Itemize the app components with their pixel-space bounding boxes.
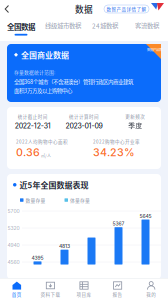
- button[interactable]: 客流数据: [126, 18, 168, 41]
- button[interactable]: 返回: [0, 1, 17, 17]
- button[interactable]: 数智产品详情了解: [104, 5, 149, 13]
- staticText: 2022购物中心开业率: [93, 138, 140, 145]
- staticText: 全国368个城市（不含港澳台）管辖行政区内商业建筑: [14, 77, 133, 85]
- staticText: 存量数据统计范围:: [14, 69, 55, 76]
- staticText: 0.36: [16, 146, 40, 159]
- staticText: 5645: [139, 213, 151, 219]
- staticText: 4560: [7, 259, 19, 265]
- staticText: 体量存量: [70, 197, 90, 204]
- staticText: 季度: [128, 122, 142, 130]
- staticText: 报告: [113, 291, 123, 298]
- button[interactable]: 品牌标识: [151, 2, 168, 15]
- staticText: 线级城市数据: [45, 21, 81, 30]
- staticText: 5367: [112, 221, 124, 227]
- button[interactable]: 项目库: [67, 278, 101, 300]
- staticText: 2022-12-31: [15, 122, 51, 130]
- staticText: 24城数据: [92, 21, 118, 30]
- staticText: 面积3万方及以上购物中心: [14, 86, 72, 94]
- button[interactable]: 线级城市数据: [42, 18, 84, 41]
- staticText: 4940: [7, 242, 19, 248]
- staticText: ㎡/人: [41, 153, 51, 159]
- button[interactable]: 资料下载: [34, 278, 67, 300]
- button[interactable]: 首页: [0, 278, 34, 300]
- button[interactable]: 全国数据: [0, 18, 42, 41]
- button[interactable]: 24城数据: [84, 18, 126, 41]
- staticText: 数据: [75, 3, 93, 15]
- staticText: 数据产品库: [147, 47, 162, 52]
- staticText: 全国商业数据: [21, 49, 69, 61]
- staticText: 34.23%: [93, 146, 135, 159]
- button[interactable]: 报告: [101, 278, 134, 300]
- staticText: 客流数据: [135, 21, 159, 30]
- button[interactable]: 我的: [134, 278, 168, 300]
- staticText: 统计截止时间: [18, 113, 48, 120]
- staticText: 4813: [59, 243, 70, 249]
- staticText: 项目库: [76, 291, 91, 298]
- staticText: 全国数据: [7, 21, 35, 32]
- staticText: 4395: [31, 255, 43, 261]
- staticText: 资料下载: [40, 291, 60, 298]
- staticText: 数量存量: [25, 197, 45, 204]
- staticText: 5700: [7, 208, 19, 214]
- staticText: 近5年全国数据表现: [19, 179, 88, 191]
- staticText: 数智产品详情了解: [106, 6, 146, 12]
- staticText: 2022人均购物中心面积: [16, 138, 68, 145]
- staticText: 我的: [146, 291, 156, 298]
- staticText: 更新频次: [125, 113, 145, 120]
- staticText: 5320: [7, 225, 19, 231]
- staticText: 2023-01-09: [65, 122, 102, 130]
- staticText: 首页: [12, 291, 22, 298]
- staticText: 统计计算时间: [69, 113, 99, 120]
